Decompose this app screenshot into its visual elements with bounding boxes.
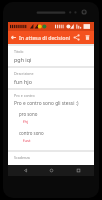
staticText: Scadenza xyxy=(14,155,30,160)
button[interactable]: Recent apps xyxy=(68,165,88,176)
staticText: pro sono xyxy=(19,111,38,117)
staticText: fhj xyxy=(23,119,29,125)
button[interactable]: Descrizione xyxy=(8,68,94,88)
button[interactable]: Back xyxy=(15,165,35,176)
staticText: Pro e contro sono gli stessi :) xyxy=(14,100,79,107)
staticText: Titolo xyxy=(14,49,24,54)
button[interactable]: Delete xyxy=(82,31,93,44)
staticText: fust xyxy=(23,138,31,144)
button[interactable]: Scadenza xyxy=(8,152,94,165)
staticText: contro sono xyxy=(19,130,44,136)
button[interactable]: Home xyxy=(41,165,61,176)
button[interactable]: Back xyxy=(8,31,19,44)
button[interactable]: Share xyxy=(71,31,82,44)
staticText: Pro e contro xyxy=(14,93,35,98)
staticText: pgh iqi xyxy=(14,56,32,63)
button[interactable]: Titolo xyxy=(8,46,94,66)
button[interactable]: Pro e contro xyxy=(8,90,94,150)
staticText: fun hjo xyxy=(14,78,32,85)
staticText: Descrizione xyxy=(14,71,34,76)
staticText: In attesa di decisioni xyxy=(19,34,71,41)
